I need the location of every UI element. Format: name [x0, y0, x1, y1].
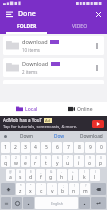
button[interactable]: ! — [69, 183, 79, 195]
button[interactable]: More options — [92, 63, 101, 72]
staticText: t — [45, 160, 47, 167]
button[interactable]: 6 — [52, 142, 62, 153]
button[interactable]: + — [68, 169, 78, 181]
staticText: Download — [22, 60, 49, 67]
button[interactable]: Online — [53, 102, 107, 116]
button[interactable]: ) — [90, 169, 100, 181]
staticText: 9 — [89, 156, 91, 160]
staticText: o — [88, 160, 92, 167]
staticText: 4 — [34, 144, 37, 151]
staticText: 10 items — [22, 47, 41, 53]
button[interactable]: Down — [10, 131, 43, 141]
button[interactable]: Comma — [23, 197, 34, 209]
button[interactable]: 7 — [63, 155, 73, 167]
staticText: 1 — [4, 144, 7, 151]
button[interactable]: : — [47, 183, 57, 195]
staticText: p — [99, 160, 103, 167]
staticText: d — [29, 174, 33, 181]
button[interactable]: download — [3, 36, 104, 55]
button[interactable]: ? — [80, 183, 90, 195]
button[interactable]: Close — [93, 9, 103, 19]
button[interactable]: - — [57, 169, 67, 181]
staticText: 0 — [100, 156, 102, 160]
button[interactable]: " — [26, 183, 35, 195]
button[interactable]: Space — [35, 197, 78, 209]
button[interactable]: _ — [36, 169, 45, 181]
staticText: k — [83, 174, 86, 181]
staticText: ( — [84, 170, 85, 174]
staticText: 7 — [67, 156, 69, 160]
button[interactable]: ( — [79, 169, 89, 181]
button[interactable]: 1 — [1, 142, 10, 153]
button[interactable]: 1 — [1, 155, 10, 167]
button[interactable]: 3 — [21, 142, 30, 153]
button[interactable]: # — [16, 169, 25, 181]
staticText: z — [19, 188, 22, 195]
staticText: 8 — [78, 156, 80, 160]
staticText: 2 items — [22, 69, 38, 75]
staticText: s — [19, 174, 22, 181]
button[interactable]: 8 — [74, 155, 84, 167]
staticText: 5 — [45, 144, 48, 151]
button[interactable]: 7 — [63, 142, 73, 153]
staticText: 8 — [78, 144, 81, 151]
button[interactable]: & — [46, 169, 56, 181]
staticText: # — [19, 170, 22, 174]
staticText: 9 — [89, 144, 92, 151]
button[interactable]: Play video — [92, 120, 104, 128]
button[interactable]: Shift — [1, 183, 15, 195]
staticText: Ad — [45, 118, 51, 123]
button[interactable]: Local — [0, 102, 53, 116]
button[interactable]: @ — [6, 169, 15, 181]
staticText: Local — [25, 106, 38, 113]
button[interactable]: 6 — [52, 155, 62, 167]
staticText: 4 — [35, 156, 37, 160]
button[interactable]: ; — [58, 183, 68, 195]
button[interactable]: 5 — [41, 142, 51, 153]
button[interactable]: Settings — [0, 131, 10, 141]
staticText: ? — [85, 184, 87, 188]
button[interactable]: More options — [92, 41, 101, 50]
button[interactable]: Menu — [4, 9, 14, 19]
button[interactable]: ' — [36, 183, 46, 195]
button[interactable]: Download — [75, 131, 107, 141]
button[interactable]: 5 — [41, 155, 51, 167]
button[interactable]: Download — [3, 58, 104, 77]
staticText: n — [72, 188, 76, 195]
button[interactable]: FOLDER — [0, 20, 53, 32]
button[interactable]: $ — [26, 169, 35, 181]
staticText: VIDEO — [72, 23, 88, 30]
staticText: c — [40, 188, 43, 195]
button[interactable]: 9 — [85, 142, 95, 153]
button[interactable]: Emoji — [12, 197, 22, 209]
staticText: 2 — [14, 144, 17, 151]
button[interactable]: 2 — [11, 155, 20, 167]
staticText: g — [49, 174, 53, 181]
button[interactable]: Dow — [43, 131, 75, 141]
staticText: 3 — [24, 144, 27, 151]
button[interactable]: 0 — [96, 155, 106, 167]
button[interactable]: Symbols — [1, 197, 11, 209]
button[interactable]: Backspace — [91, 183, 106, 195]
staticText: 6 — [57, 156, 59, 160]
button[interactable]: 9 — [85, 155, 95, 167]
button[interactable]: AdMob has a YouT — [0, 116, 107, 131]
button[interactable]: 4 — [31, 155, 40, 167]
button[interactable]: Enter — [91, 197, 106, 209]
staticText: ) — [95, 170, 96, 174]
staticText: 6 — [56, 144, 59, 151]
staticText: @ — [9, 170, 12, 174]
button[interactable]: 2 — [11, 142, 20, 153]
staticText: Down — [20, 133, 34, 140]
button[interactable]: Period — [79, 197, 90, 209]
staticText: m — [83, 188, 88, 195]
button[interactable]: 8 — [74, 142, 84, 153]
staticText: download — [22, 38, 48, 45]
button[interactable]: VIDEO — [53, 20, 107, 32]
button[interactable]: * — [16, 183, 25, 195]
button[interactable]: 0 — [96, 142, 106, 153]
staticText: a — [9, 174, 12, 181]
staticText: i — [78, 160, 80, 167]
button[interactable]: 3 — [21, 155, 30, 167]
button[interactable]: 4 — [31, 142, 40, 153]
